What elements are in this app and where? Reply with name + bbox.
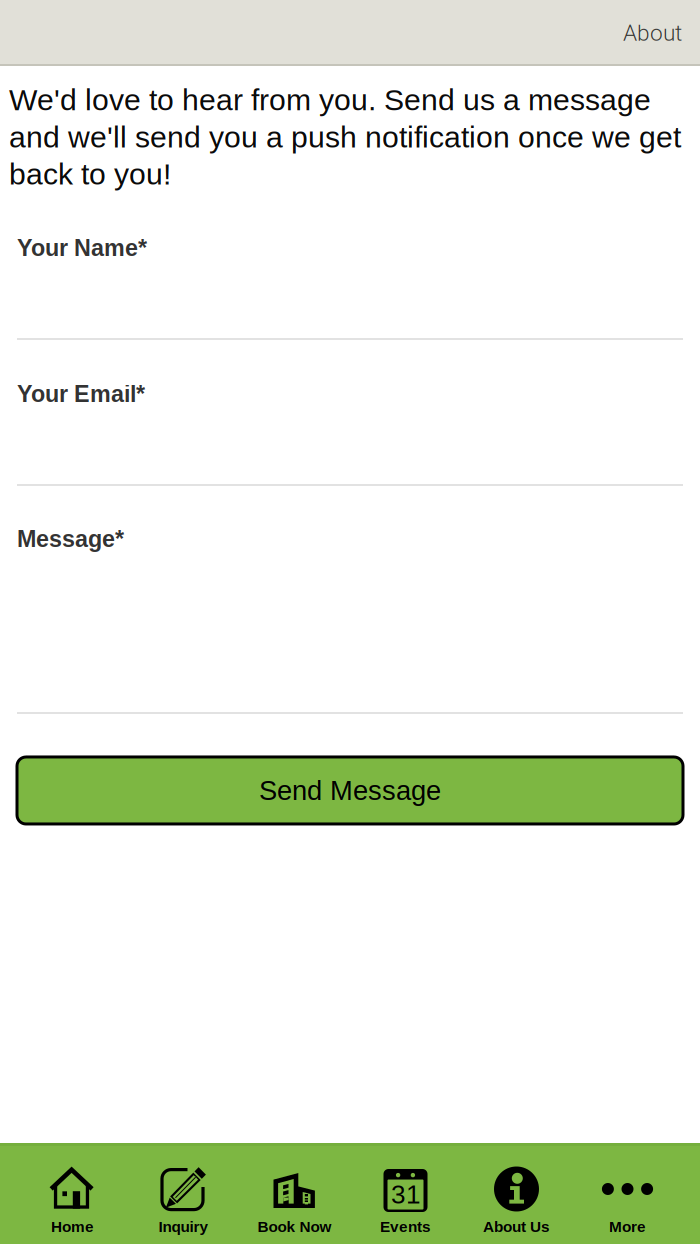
button[interactable]: Book Now	[239, 1143, 350, 1244]
button[interactable]: About	[615, 10, 690, 56]
button[interactable]: Send Message	[0, 757, 700, 824]
button[interactable]: About Us	[461, 1143, 572, 1244]
button[interactable]: Inquiry	[128, 1143, 239, 1244]
button[interactable]: More	[572, 1143, 683, 1244]
staticText: Inquiry	[158, 1218, 208, 1235]
staticText: Events	[380, 1218, 431, 1235]
button[interactable]: 31	[350, 1143, 461, 1244]
staticText: 31	[391, 1180, 421, 1209]
button[interactable]	[0, 551, 700, 714]
staticText: Home	[51, 1218, 94, 1235]
staticText: Send Message	[259, 775, 441, 806]
staticText: About	[623, 20, 682, 46]
button[interactable]	[0, 406, 700, 486]
staticText: Message*	[17, 526, 124, 552]
staticText: Your Email*	[17, 381, 145, 407]
staticText: Your Name*	[17, 235, 147, 261]
button[interactable]: Home	[17, 1143, 128, 1244]
staticText: We'd love to hear from you. Send us a me…	[9, 83, 681, 191]
button[interactable]	[0, 260, 700, 340]
staticText: Book Now	[257, 1218, 331, 1235]
staticText: More	[609, 1218, 646, 1235]
staticText: About Us	[483, 1218, 550, 1235]
